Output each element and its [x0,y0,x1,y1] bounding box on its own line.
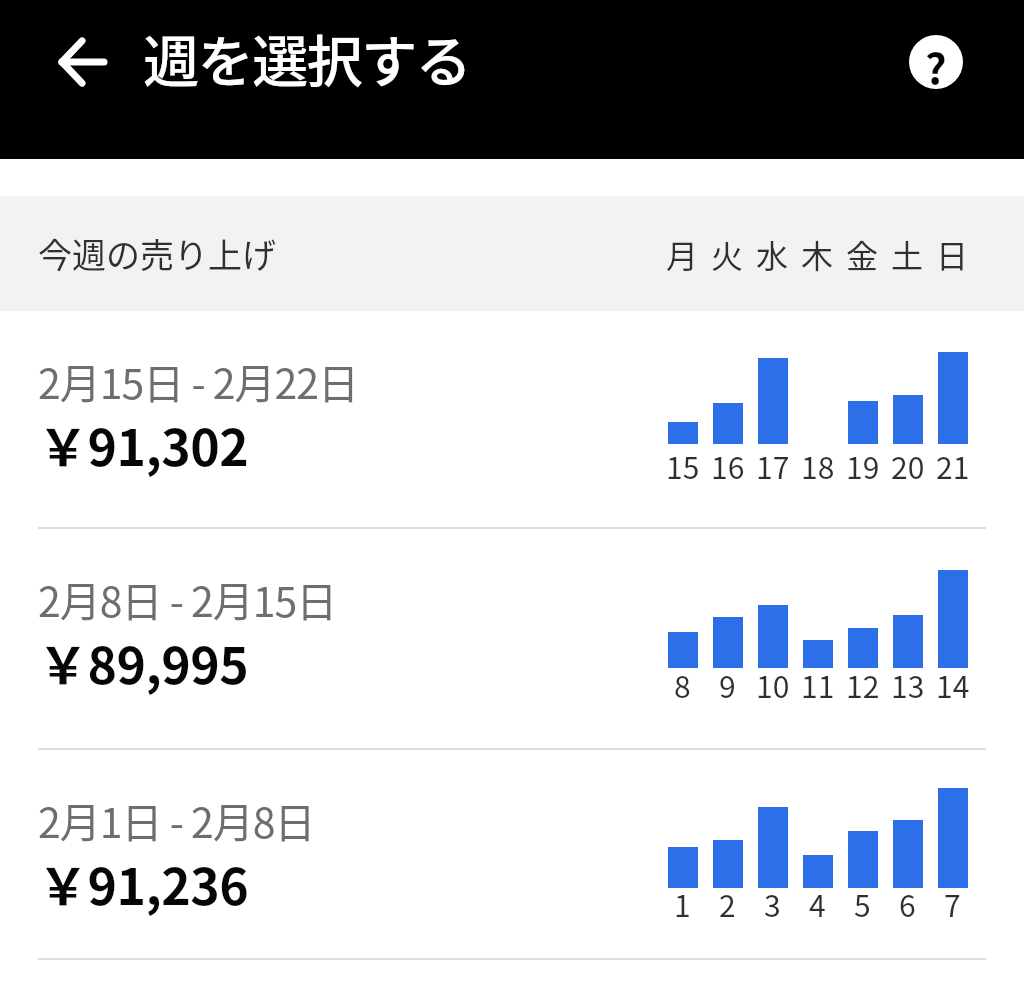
staticText: ￥91,236 [38,847,249,919]
staticText: 2 [719,882,736,925]
staticText: 2月8日 - 2月15日 [38,569,337,628]
staticText: 21 [936,444,970,487]
staticText: 11 [801,663,835,706]
staticText: 10 [756,663,790,706]
staticText: ? [925,35,947,89]
staticText: 9 [719,663,736,706]
staticText: 日 [936,231,969,277]
staticText: 3 [764,882,781,925]
staticText: 今週の売り上げ [38,229,276,278]
button[interactable]: ? [909,35,963,89]
button[interactable]: 2月1日 - 2月8日 [0,750,1024,958]
staticText: 1 [674,882,691,925]
button[interactable]: 2月15日 - 2月22日 [0,311,1024,527]
staticText: ￥89,995 [38,626,249,698]
button[interactable] [38,17,128,107]
staticText: 月 [666,231,699,277]
staticText: 15 [666,444,700,487]
staticText: 土 [891,231,924,277]
staticText: 18 [801,444,835,487]
staticText: 12 [846,663,880,706]
staticText: 13 [891,663,925,706]
staticText: 木 [801,231,834,277]
staticText: 5 [854,882,871,925]
staticText: 2月15日 - 2月22日 [38,351,359,410]
staticText: 17 [756,444,790,487]
button[interactable]: 2月8日 - 2月15日 [0,529,1024,748]
staticText: 週を選択する [144,17,471,98]
staticText: 20 [891,444,925,487]
staticText: 火 [711,231,744,277]
staticText: 4 [809,882,826,925]
staticText: 7 [944,882,961,925]
staticText: ￥91,302 [38,408,249,480]
staticText: 6 [899,882,916,925]
staticText: 水 [756,231,789,277]
staticText: 8 [674,663,691,706]
staticText: 16 [711,444,745,487]
staticText: 金 [846,231,879,277]
staticText: 14 [936,663,970,706]
staticText: 2月1日 - 2月8日 [38,790,315,849]
staticText: 19 [846,444,880,487]
